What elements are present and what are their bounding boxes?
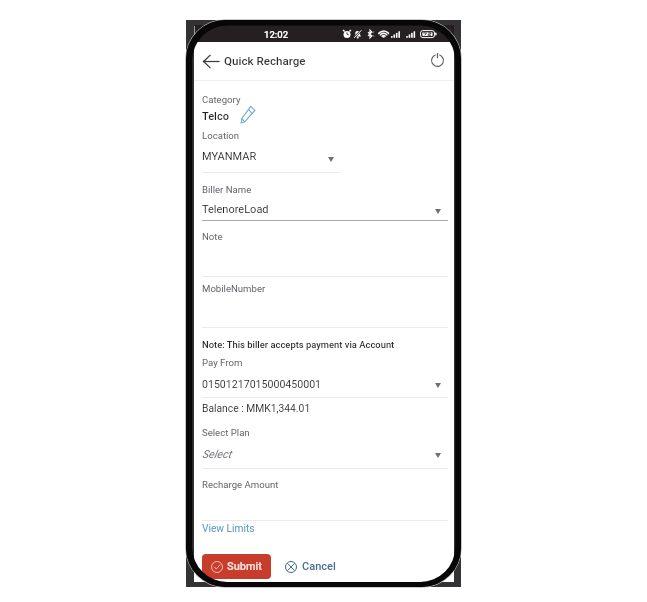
button[interactable]: View Limits	[202, 523, 255, 535]
staticText: Quick Recharge	[224, 54, 306, 68]
staticText: View Limits	[202, 523, 255, 535]
staticText: Note: This biller accepts payment via Ac…	[202, 339, 395, 350]
staticText: MYANMAR	[202, 150, 257, 163]
button[interactable]: Submit	[202, 554, 271, 579]
button[interactable]: Cancel	[285, 554, 336, 579]
button[interactable]: Power	[424, 47, 450, 73]
staticText: Category	[202, 94, 241, 105]
button[interactable]: Quick Recharge	[224, 48, 306, 74]
staticText: Submit	[227, 560, 263, 573]
button[interactable]	[202, 446, 448, 468]
staticText: 01501217015000450001	[202, 378, 322, 390]
staticText: Recharge Amount	[202, 479, 279, 490]
staticText: Location	[202, 130, 240, 141]
button[interactable]	[202, 200, 448, 224]
button[interactable]: Back	[198, 47, 224, 75]
staticText: Cancel	[302, 560, 336, 573]
button[interactable]: Edit category	[237, 103, 259, 125]
staticText: 12:02	[264, 29, 289, 40]
button[interactable]	[202, 376, 448, 398]
staticText: Select	[202, 448, 232, 461]
staticText: Select Plan	[202, 427, 250, 438]
staticText: Biller Name	[202, 184, 252, 195]
staticText: TelenoreLoad	[202, 203, 269, 216]
staticText: Pay From	[202, 357, 243, 368]
button[interactable]	[202, 148, 340, 174]
staticText: Balance : MMK1,344.01	[202, 402, 311, 414]
staticText: MobileNumber	[202, 283, 266, 294]
staticText: Note	[202, 231, 223, 242]
staticText: Telco	[202, 110, 229, 123]
